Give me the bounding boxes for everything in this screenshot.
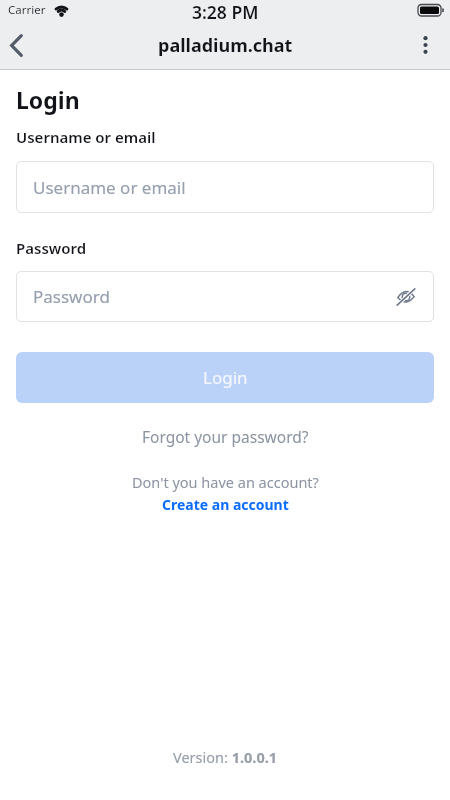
button[interactable]: Username or email [16,161,434,213]
button[interactable]: Password [16,271,434,322]
staticText: Username or email [33,176,186,199]
button[interactable] [390,273,434,321]
staticText: Version: 1.0.0.1 [173,747,278,767]
button[interactable]: Forgot your password? [142,426,309,447]
button[interactable]: Login [16,352,434,403]
staticText: Login [203,366,248,389]
staticText: palladium.chat [158,33,293,58]
button[interactable] [401,21,450,69]
staticText: Username or email [16,127,156,147]
staticText: Login [16,84,80,115]
staticText: Create an account [162,495,289,514]
staticText: Password [33,285,110,308]
staticText: Carrier [8,2,46,18]
staticText: 3:28 PM [192,0,259,19]
button[interactable]: Create an account [162,495,289,514]
staticText: Forgot your password? [142,426,309,447]
staticText: Don't you have an account? [132,472,319,492]
button[interactable] [0,21,40,69]
staticText: Password [16,238,87,258]
